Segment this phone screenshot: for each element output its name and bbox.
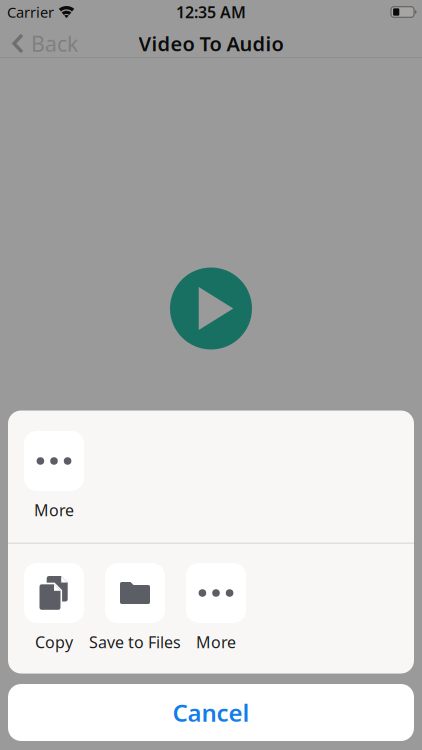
button[interactable]: Cancel <box>8 684 414 741</box>
button[interactable]: Save to Files <box>94 563 175 650</box>
staticText: Carrier <box>7 2 54 22</box>
button[interactable]: More <box>175 563 256 650</box>
staticText: Video To Audio <box>138 30 283 57</box>
staticText: Cancel <box>172 697 249 728</box>
staticText: Back <box>31 29 78 58</box>
staticText: More <box>196 631 236 653</box>
staticText: More <box>34 499 74 521</box>
staticText: 12:35 AM <box>176 1 246 23</box>
staticText: Copy <box>35 631 73 653</box>
staticText: Save to Files <box>89 631 181 653</box>
button[interactable]: Back <box>12 29 78 58</box>
button[interactable]: Play <box>170 267 252 349</box>
button[interactable]: More <box>13 431 94 518</box>
button[interactable]: Copy <box>13 563 94 650</box>
